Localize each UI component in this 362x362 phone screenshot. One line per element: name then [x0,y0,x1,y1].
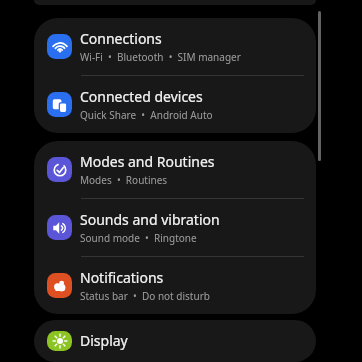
staticText: Sound mode • Ringtone [80,231,197,245]
staticText: Connected devices [80,87,203,106]
staticText: Notifications [80,268,164,287]
staticText: Display [80,331,128,350]
button[interactable]: Notifications [34,257,316,314]
other: Modes and Routines [47,157,72,182]
staticText: Wi-Fi • Bluetooth • SIM manager [80,50,241,64]
staticText: Modes and Routines [80,152,215,171]
other: Connected devices [47,92,72,117]
button[interactable]: Sounds and vibration [34,199,316,256]
button[interactable]: Display [34,320,316,362]
other: Display [47,331,72,351]
staticText: Connections [80,29,162,48]
other: Notifications [47,273,72,298]
button[interactable]: Modes and Routines [34,141,316,198]
staticText: Sounds and vibration [80,210,220,229]
button[interactable]: Connections [34,18,316,75]
staticText: Quick Share • Android Auto [80,108,213,122]
staticText: Modes • Routines [80,173,168,187]
staticText: Status bar • Do not disturb [80,289,210,303]
button[interactable]: Connected devices [34,76,316,133]
other: Connections [47,34,72,59]
other: Sounds and vibration [47,215,72,240]
